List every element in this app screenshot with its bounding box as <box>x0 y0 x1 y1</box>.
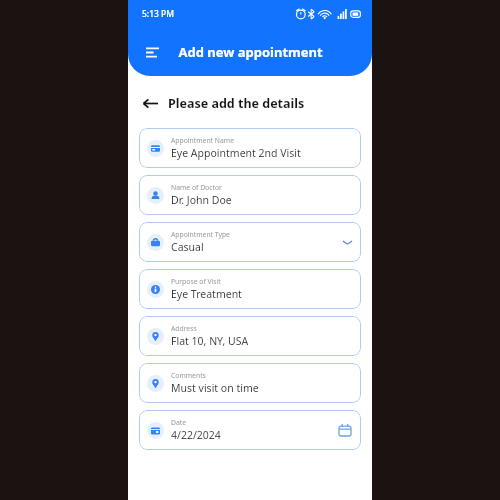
staticText: Date <box>171 418 187 427</box>
staticText: Appointment Type <box>171 230 230 239</box>
button[interactable]: Appointment Name <box>139 128 361 168</box>
staticText: 4/22/2024 <box>171 428 221 442</box>
staticText: Appointment Name <box>171 136 234 145</box>
button[interactable]: Expand appointment type <box>339 234 355 250</box>
staticText: Name of Doctor <box>171 183 222 192</box>
button[interactable]: Comments <box>139 363 361 403</box>
staticText: Dr. John Doe <box>171 193 232 207</box>
staticText: Please add the details <box>168 95 305 112</box>
staticText: Must visit on time <box>171 381 259 395</box>
button[interactable]: Appointment Type <box>139 222 361 262</box>
staticText: Eye Appointment 2nd Visit <box>171 146 301 160</box>
button[interactable]: Name of Doctor <box>139 175 361 215</box>
staticText: 5:13 PM <box>142 8 175 20</box>
staticText: Flat 10, NY, USA <box>171 334 249 348</box>
button[interactable]: Pick date <box>335 420 355 440</box>
staticText: Casual <box>171 240 204 254</box>
staticText: Purpose of Visit <box>171 277 221 286</box>
button[interactable]: Back <box>139 92 161 114</box>
button[interactable]: Menu <box>139 39 165 65</box>
staticText: Eye Treatment <box>171 287 242 301</box>
staticText: Add new appointment <box>178 43 323 61</box>
button[interactable]: Address <box>139 316 361 356</box>
staticText: Address <box>171 324 197 333</box>
staticText: Comments <box>171 371 206 380</box>
button[interactable]: Purpose of Visit <box>139 269 361 309</box>
button[interactable]: Date <box>139 410 361 450</box>
